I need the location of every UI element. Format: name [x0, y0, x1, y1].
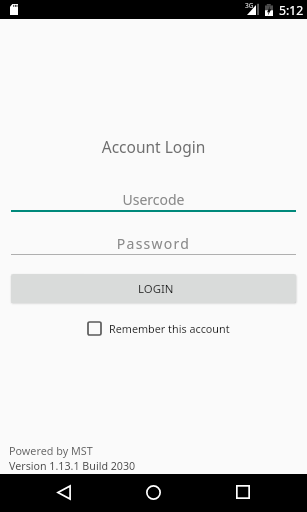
staticText: 5:12 — [279, 2, 304, 19]
staticText: 3G — [245, 1, 254, 10]
staticText: Usercode — [11, 190, 296, 209]
button[interactable]: Remember this account — [82, 316, 230, 340]
staticText: Version 1.13.1 Build 2030 — [9, 459, 136, 474]
button[interactable]: LOGIN — [11, 274, 296, 303]
button[interactable]: Password — [11, 230, 296, 255]
staticText: Account Login — [0, 136, 307, 157]
button[interactable]: Usercode — [11, 186, 296, 212]
button[interactable]: Home — [133, 474, 173, 512]
button[interactable]: Back — [44, 474, 84, 512]
staticText: Powered by MST — [9, 443, 93, 458]
staticText: Password — [11, 234, 296, 253]
button[interactable]: Recents — [223, 474, 263, 512]
staticText: LOGIN — [138, 281, 174, 297]
staticText: Remember this account — [109, 321, 230, 336]
